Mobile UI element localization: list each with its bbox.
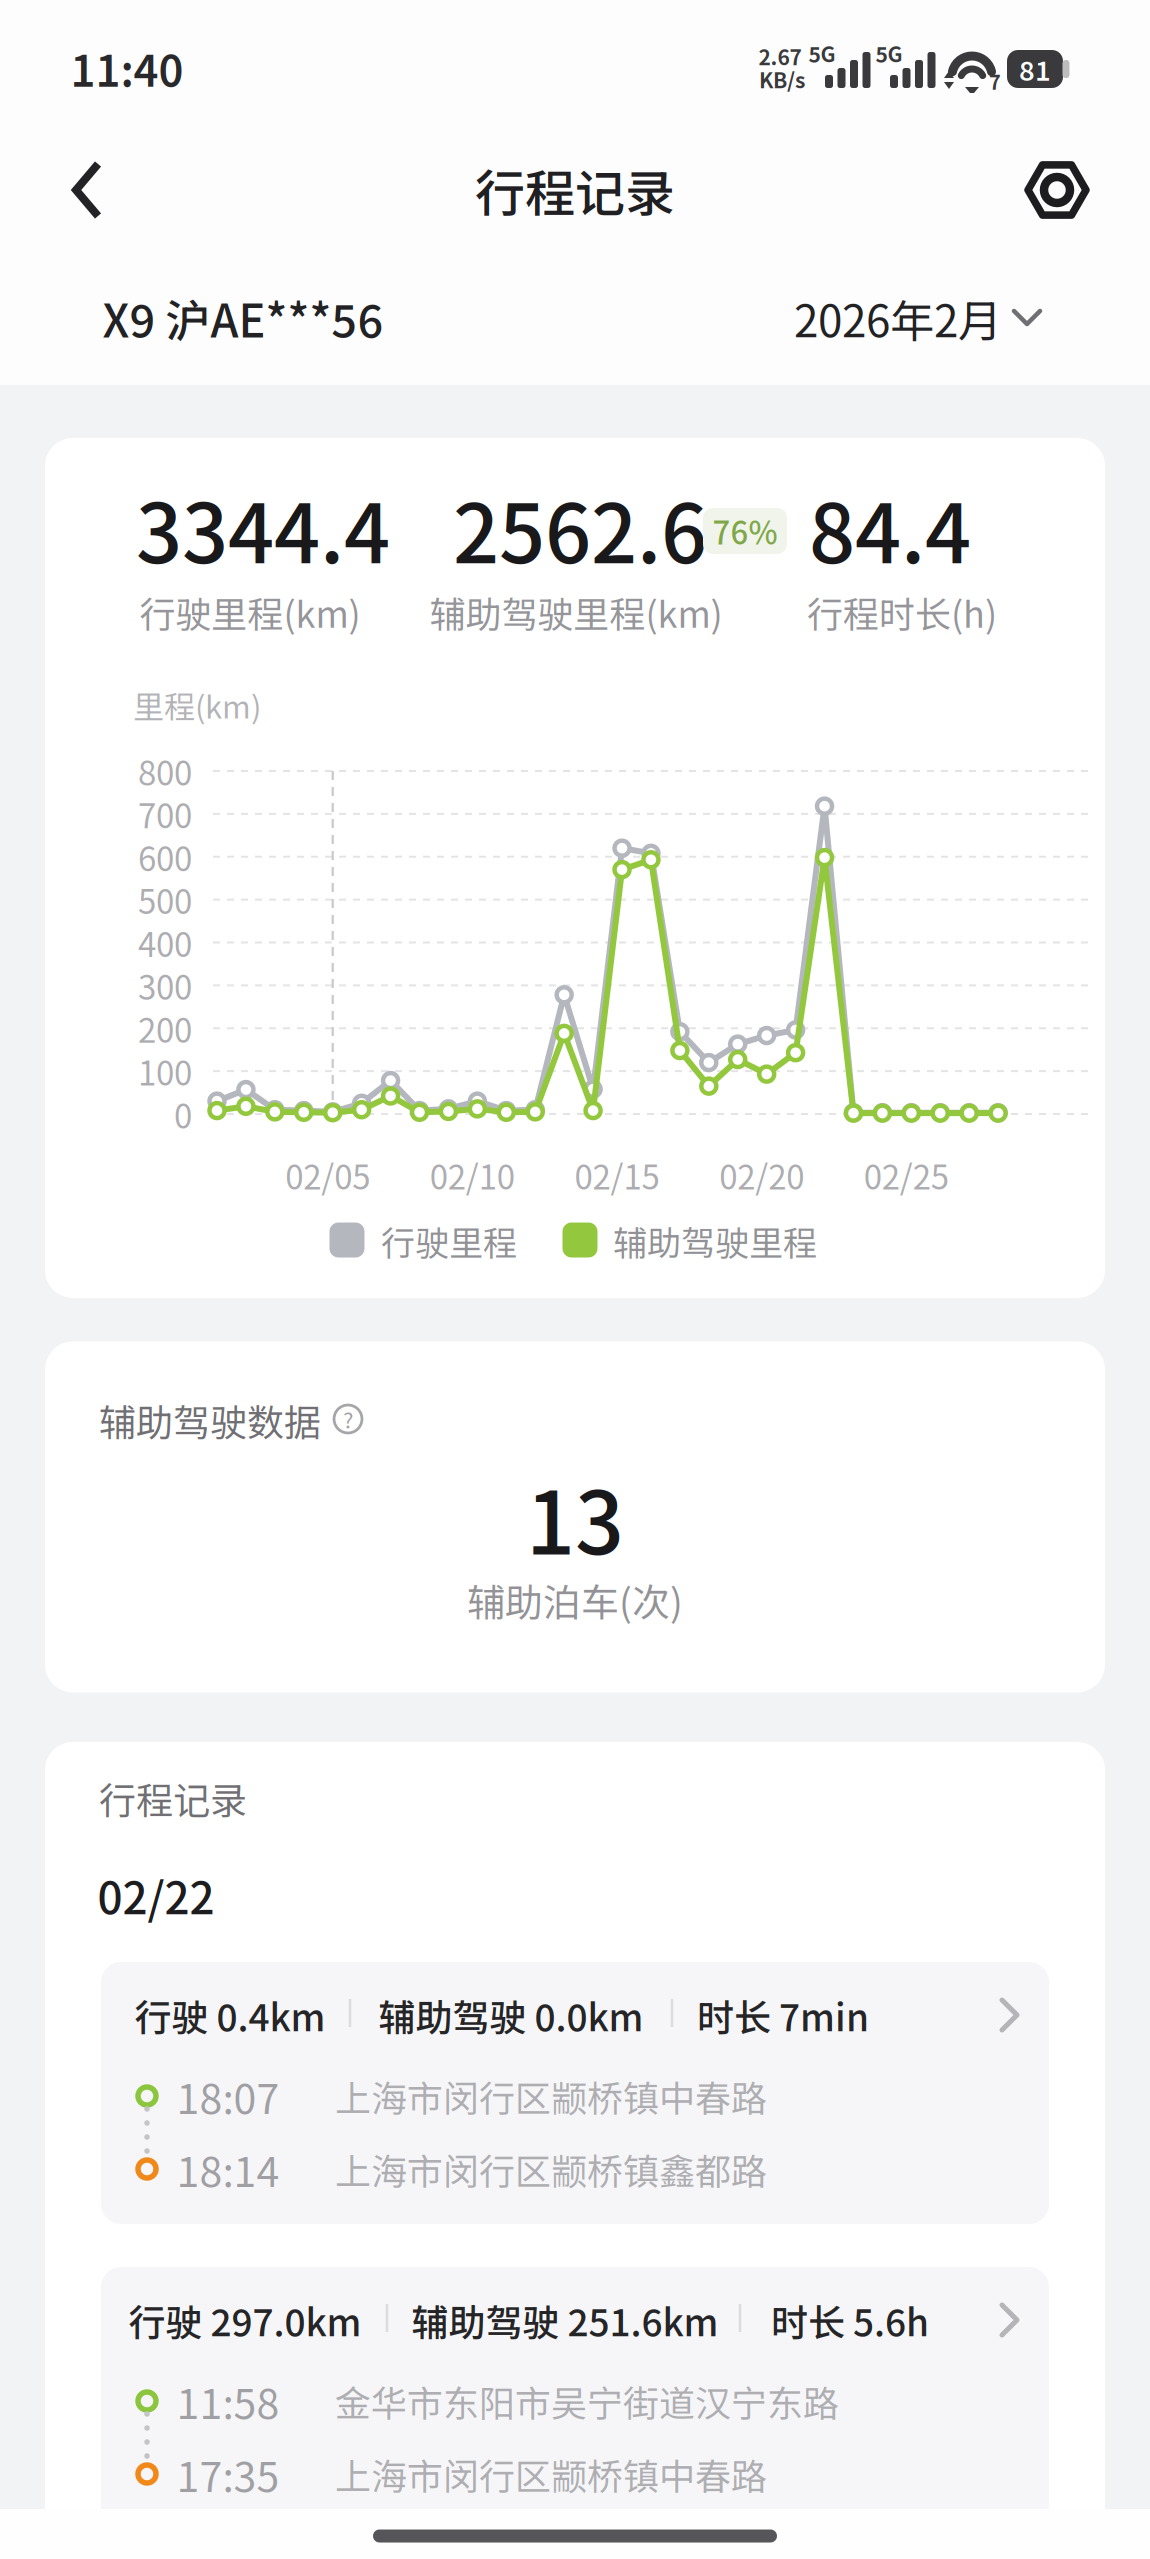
- staticText: 行驶里程(km): [139, 586, 360, 638]
- staticText: 行驶 0.4km: [134, 1988, 325, 2042]
- staticText: 11:58: [176, 2371, 279, 2431]
- staticText: 辅助驾驶里程: [613, 1216, 817, 1266]
- staticText: 100: [138, 1047, 192, 1095]
- staticText: 0: [174, 1090, 192, 1138]
- button[interactable]: 2026年2月: [794, 286, 1042, 350]
- staticText: 5G: [875, 38, 902, 68]
- staticText: 行程时长(h): [807, 586, 997, 638]
- staticText: 02/10: [430, 1151, 515, 1199]
- staticText: 7: [989, 66, 1001, 95]
- staticText: 18:14: [176, 2139, 279, 2199]
- staticText: 时长 5.6h: [771, 2293, 929, 2347]
- staticText: 17:35: [176, 2444, 279, 2504]
- staticText: 时长 7min: [697, 1988, 869, 2042]
- staticText: 300: [138, 961, 192, 1009]
- staticText: 上海市闵行区颛桥镇中春路: [335, 2070, 767, 2122]
- staticText: 上海市闵行区颛桥镇中春路: [335, 2448, 767, 2500]
- button[interactable]: Back: [74, 162, 104, 218]
- staticText: X9 沪AE***56: [102, 285, 383, 351]
- staticText: 76%: [712, 509, 777, 553]
- staticText: 02/20: [719, 1151, 804, 1199]
- staticText: 81: [1019, 49, 1051, 89]
- staticText: 辅助驾驶 251.6km: [411, 2293, 718, 2347]
- button[interactable]: 行驶 0.4km: [101, 1962, 1049, 2224]
- staticText: 辅助泊车(次): [467, 1572, 683, 1627]
- staticText: 3344.4: [136, 469, 390, 587]
- staticText: 辅助驾驶里程(km): [429, 586, 722, 638]
- staticText: 02/05: [285, 1151, 370, 1199]
- staticText: 辅助驾驶数据: [99, 1393, 321, 1447]
- staticText: 辅助驾驶 0.0km: [378, 1988, 643, 2042]
- staticText: 行程记录: [475, 154, 675, 226]
- staticText: 600: [138, 833, 192, 881]
- staticText: 里程(km): [133, 683, 261, 727]
- staticText: 700: [138, 790, 192, 838]
- staticText: 行程记录: [99, 1771, 247, 1825]
- staticText: 2562.6: [453, 469, 707, 587]
- staticText: 13: [526, 1455, 624, 1579]
- staticText: 11:40: [70, 37, 183, 99]
- staticText: 02/22: [97, 1863, 214, 1927]
- staticText: 上海市闵行区颛桥镇鑫都路: [335, 2143, 767, 2195]
- button[interactable]: Help: [332, 1403, 364, 1435]
- staticText: 18:07: [176, 2066, 279, 2126]
- staticText: 800: [138, 747, 192, 795]
- staticText: 84.4: [809, 469, 971, 587]
- staticText: 行驶里程: [381, 1216, 517, 1266]
- staticText: KB/s: [759, 64, 805, 94]
- staticText: 500: [138, 876, 192, 923]
- staticText: 金华市东阳市吴宁街道汉宁东路: [335, 2375, 839, 2427]
- staticText: 5G: [808, 38, 835, 68]
- staticText: 02/25: [864, 1151, 949, 1199]
- staticText: 行驶 297.0km: [128, 2293, 361, 2347]
- staticText: 2026年2月: [794, 286, 1002, 350]
- staticText: 200: [138, 1004, 192, 1052]
- staticText: 400: [138, 919, 192, 966]
- button[interactable]: Settings: [1024, 161, 1088, 219]
- staticText: 02/15: [574, 1151, 659, 1199]
- staticText: ?: [343, 1403, 353, 1435]
- button[interactable]: 行驶 297.0km: [101, 2267, 1049, 2529]
- staticText: 2.67: [758, 41, 801, 71]
